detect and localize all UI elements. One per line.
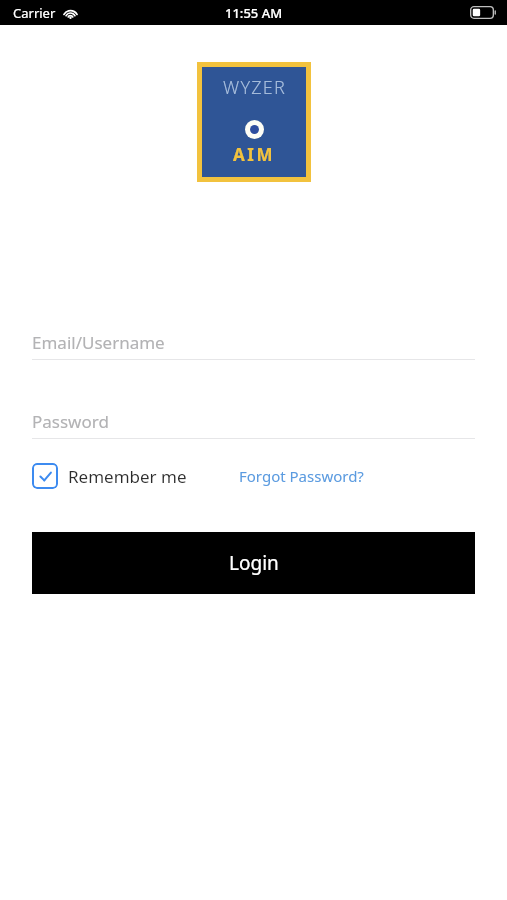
- staticText: AIM: [233, 143, 275, 166]
- button[interactable]: Forgot Password?: [237, 460, 366, 492]
- staticText: Login: [229, 550, 279, 576]
- staticText: 11:55 AM: [225, 4, 283, 22]
- button[interactable]: Email/Username: [32, 325, 475, 360]
- button[interactable]: Password: [32, 404, 475, 439]
- staticText: Forgot Password?: [239, 466, 364, 486]
- staticText: Carrier: [13, 4, 56, 22]
- staticText: WYZER: [223, 75, 286, 100]
- button[interactable]: Remember me: [32, 463, 195, 489]
- staticText: Email/Username: [32, 331, 165, 354]
- staticText: Remember me: [68, 465, 187, 488]
- staticText: Password: [32, 410, 109, 433]
- button[interactable]: Login: [32, 532, 475, 594]
